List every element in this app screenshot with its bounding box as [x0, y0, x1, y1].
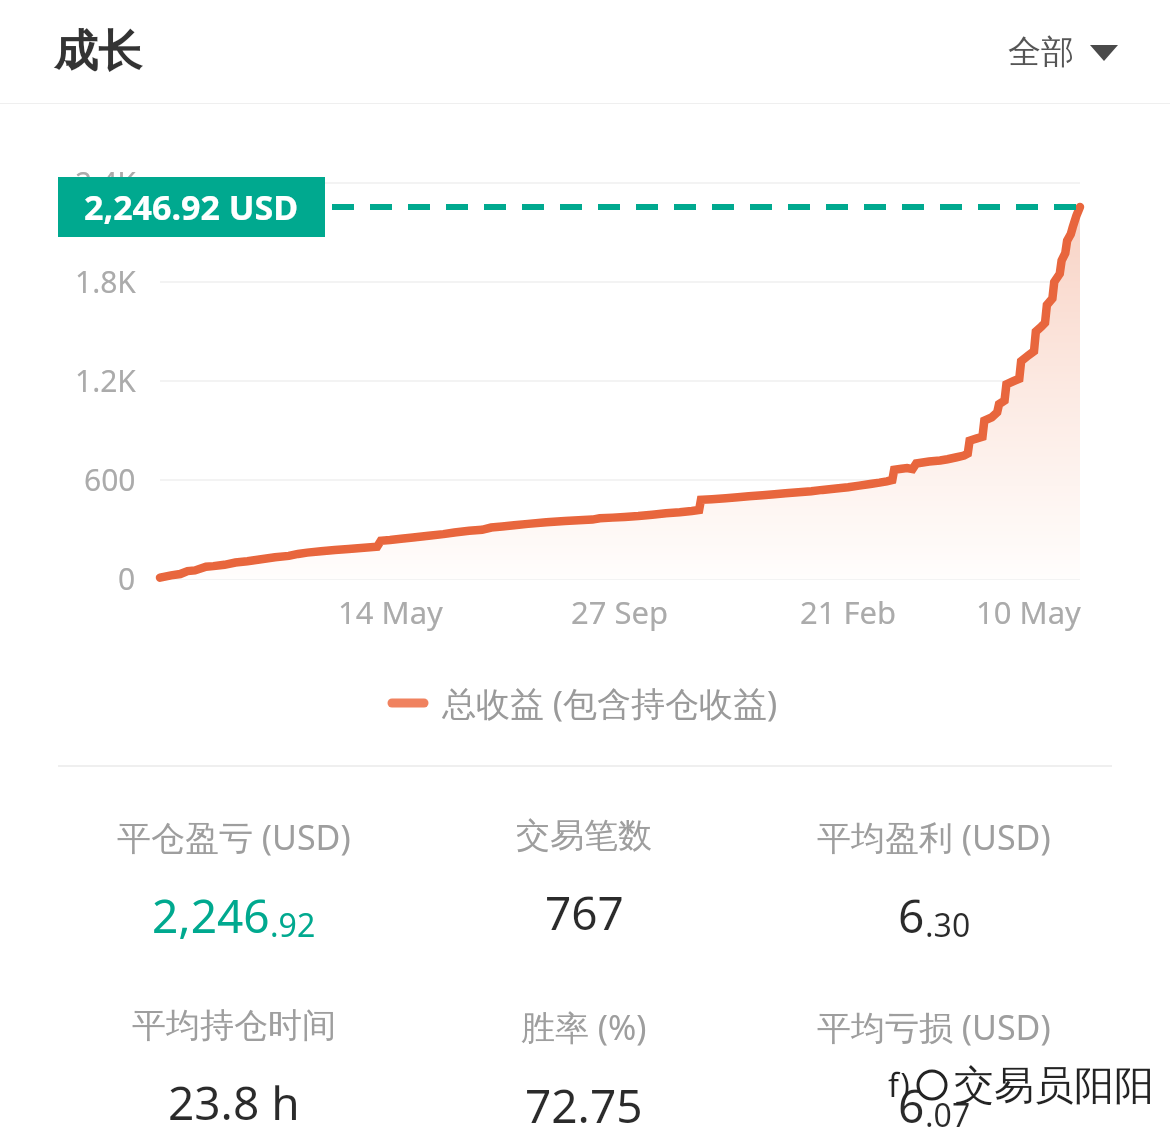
staticText: 27 Sep — [571, 591, 669, 633]
staticText: 767 — [545, 881, 624, 944]
button[interactable]: 成长 — [54, 24, 142, 79]
staticText: 14 May — [338, 591, 443, 633]
button[interactable]: 全部 — [1008, 31, 1118, 73]
button[interactable]: 平均亏损 (USD) — [817, 1004, 1051, 1137]
staticText: 21 Feb — [800, 591, 897, 633]
staticText: 23.8 h — [168, 1071, 300, 1134]
staticText: 交易员阳阳 — [954, 1060, 1154, 1110]
staticText: 平均持仓时间 — [132, 1004, 336, 1047]
staticText: 10 May — [976, 591, 1081, 633]
staticText: f) — [888, 1063, 910, 1107]
button[interactable]: 胜率 (%) — [521, 1004, 647, 1137]
staticText: 平仓盈亏 (USD) — [117, 814, 351, 860]
staticText: 600 — [84, 459, 136, 500]
button[interactable]: 2,246.92 USD — [58, 177, 325, 237]
staticText: 1.8K — [75, 261, 136, 302]
staticText: 6 — [898, 884, 925, 947]
staticText: 72.75 — [525, 1074, 643, 1137]
staticText: 0 — [118, 558, 136, 599]
staticText: 6 — [898, 1074, 925, 1137]
staticText: 2,246.92 USD — [84, 184, 299, 230]
staticText: 成长 — [54, 24, 142, 79]
staticText: 平均盈利 (USD) — [817, 814, 1051, 860]
staticText: 总收益 (包含持仓收益) — [442, 680, 778, 726]
staticText: 全部 — [1008, 31, 1074, 73]
staticText: 胜率 (%) — [521, 1004, 647, 1050]
button[interactable]: 交易笔数 — [516, 814, 652, 944]
staticText: .92 — [270, 903, 316, 947]
button[interactable]: 平均盈利 (USD) — [817, 814, 1051, 947]
staticText: .30 — [925, 903, 971, 947]
staticText: 2,246 — [152, 884, 270, 947]
button[interactable]: 平均持仓时间 — [132, 1004, 336, 1134]
staticText: .07 — [925, 1093, 971, 1137]
staticText: 平均亏损 (USD) — [817, 1004, 1051, 1050]
button[interactable]: 总收益 (包含持仓收益) — [0, 678, 1170, 728]
staticText: 1.2K — [75, 360, 136, 401]
staticText: 交易笔数 — [516, 814, 652, 857]
button[interactable]: 平仓盈亏 (USD) — [117, 814, 351, 947]
staticText: 2.4K — [75, 162, 136, 203]
